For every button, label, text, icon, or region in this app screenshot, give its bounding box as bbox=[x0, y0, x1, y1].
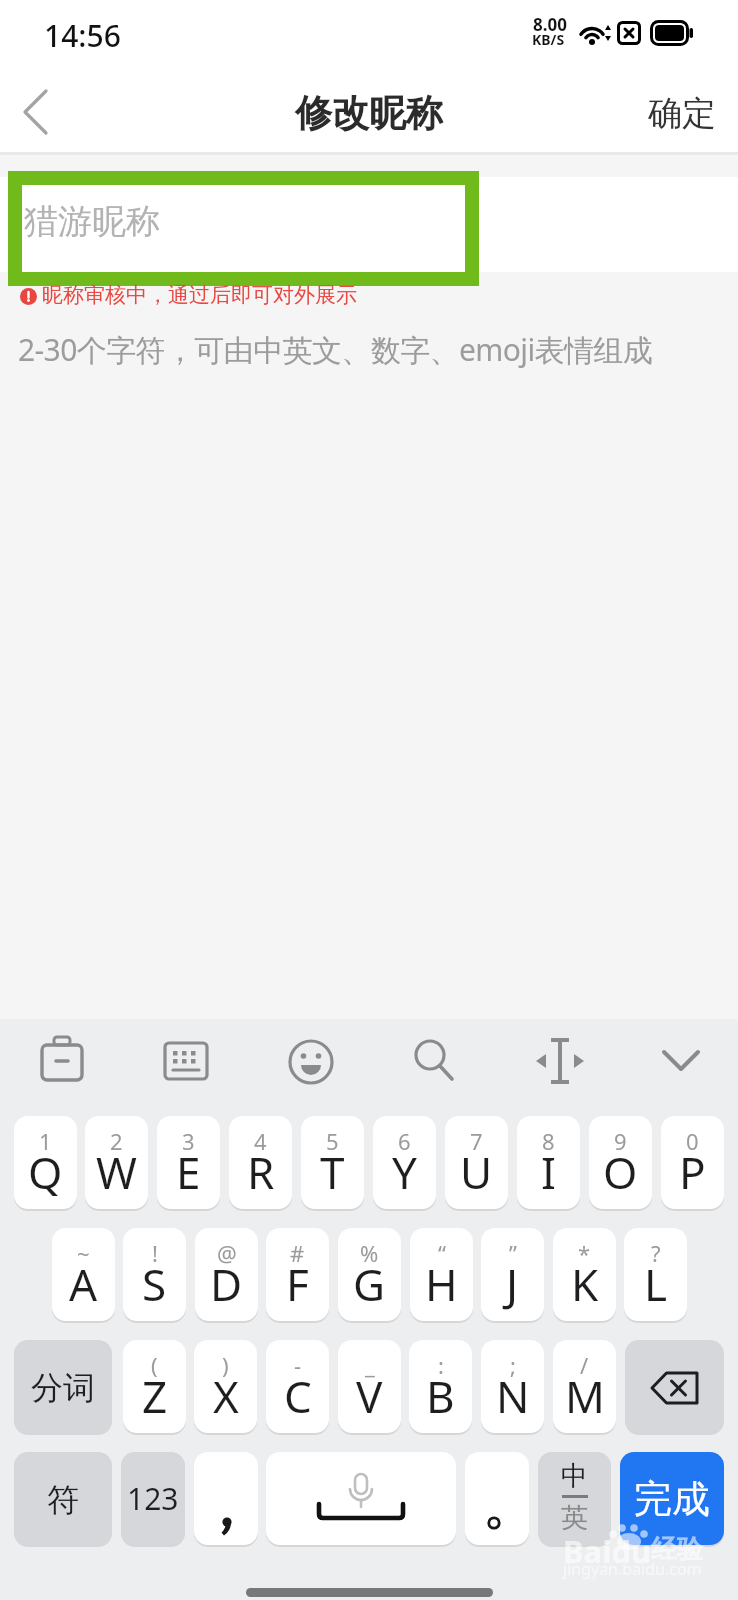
staticText: : bbox=[438, 1350, 444, 1380]
button[interactable]: ~ bbox=[52, 1228, 115, 1321]
button[interactable]: 4 bbox=[229, 1116, 292, 1209]
staticText: 123 bbox=[127, 1478, 179, 1519]
button[interactable]: 确定 bbox=[640, 88, 724, 138]
button[interactable] bbox=[465, 1452, 529, 1545]
staticText: 3 bbox=[182, 1126, 195, 1156]
button[interactable]: 9 bbox=[589, 1116, 652, 1209]
button[interactable] bbox=[401, 1027, 465, 1091]
button[interactable]: ; bbox=[481, 1340, 544, 1433]
staticText: 猎游昵称 bbox=[24, 200, 160, 243]
button[interactable]: 6 bbox=[373, 1116, 436, 1209]
staticText: R bbox=[247, 1142, 275, 1202]
staticText: Q bbox=[28, 1142, 63, 1202]
staticText: I bbox=[541, 1142, 556, 1202]
staticText: 1 bbox=[39, 1126, 52, 1156]
staticText: 0 bbox=[686, 1126, 699, 1156]
button[interactable]: ? bbox=[624, 1228, 687, 1321]
button[interactable]: # bbox=[266, 1228, 329, 1321]
staticText: U bbox=[460, 1142, 493, 1202]
staticText: - bbox=[294, 1350, 302, 1380]
staticText: D bbox=[210, 1254, 243, 1314]
staticText: O bbox=[603, 1142, 638, 1202]
button[interactable] bbox=[279, 1029, 343, 1093]
staticText: 中 bbox=[561, 1459, 588, 1493]
staticText: N bbox=[496, 1366, 530, 1426]
staticText: 经验 bbox=[651, 1533, 703, 1566]
staticText: X bbox=[213, 1366, 239, 1426]
staticText: E bbox=[176, 1142, 201, 1202]
staticText: 修改昵称 bbox=[295, 90, 443, 137]
staticText: W bbox=[96, 1142, 137, 1202]
staticText: M bbox=[565, 1366, 605, 1426]
staticText: # bbox=[290, 1238, 305, 1268]
button[interactable]: : bbox=[409, 1340, 472, 1433]
staticText: 确定 bbox=[648, 92, 716, 135]
staticText: J bbox=[506, 1254, 519, 1314]
button[interactable]: ( bbox=[123, 1340, 186, 1433]
staticText: ( bbox=[151, 1350, 158, 1380]
button[interactable]: @ bbox=[195, 1228, 258, 1321]
staticText: / bbox=[580, 1350, 589, 1380]
button[interactable]: 中 bbox=[538, 1452, 611, 1545]
button[interactable] bbox=[10, 85, 62, 141]
button[interactable]: 2 bbox=[85, 1116, 148, 1209]
button[interactable]: 5 bbox=[301, 1116, 364, 1209]
staticText: 6 bbox=[398, 1126, 411, 1156]
button[interactable]: ” bbox=[481, 1228, 544, 1321]
staticText: Y bbox=[392, 1142, 417, 1202]
staticText: ; bbox=[510, 1350, 516, 1380]
button[interactable]: 3 bbox=[157, 1116, 220, 1209]
staticText: F bbox=[286, 1254, 309, 1314]
staticText: 符 bbox=[47, 1480, 79, 1520]
staticText: ! bbox=[152, 1238, 158, 1268]
staticText: 7 bbox=[470, 1126, 483, 1156]
button[interactable]: - bbox=[266, 1340, 329, 1433]
staticText: Z bbox=[142, 1366, 168, 1426]
staticText: S bbox=[142, 1254, 167, 1314]
staticText: ? bbox=[651, 1238, 661, 1268]
button[interactable] bbox=[0, 177, 738, 272]
button[interactable] bbox=[649, 1029, 713, 1093]
button[interactable]: * bbox=[553, 1228, 616, 1321]
staticText: @ bbox=[217, 1238, 237, 1268]
staticText: ” bbox=[509, 1238, 517, 1268]
button[interactable]: 8 bbox=[517, 1116, 580, 1209]
staticText: KB/S bbox=[532, 30, 565, 49]
staticText: * bbox=[578, 1238, 591, 1268]
staticText: 8.00 bbox=[533, 13, 567, 36]
button[interactable]: 完成 bbox=[620, 1452, 724, 1545]
button[interactable]: 符 bbox=[14, 1452, 112, 1545]
staticText: 英 bbox=[561, 1501, 588, 1535]
button[interactable] bbox=[266, 1452, 456, 1545]
button[interactable] bbox=[194, 1452, 258, 1545]
staticText: ) bbox=[222, 1350, 229, 1380]
button[interactable]: 123 bbox=[121, 1452, 185, 1545]
button[interactable]: 分词 bbox=[14, 1340, 112, 1433]
staticText: C bbox=[284, 1366, 312, 1426]
staticText: jingyan.baidu.com bbox=[563, 1558, 702, 1580]
staticText: 14:56 bbox=[44, 15, 121, 56]
staticText: _ bbox=[365, 1350, 375, 1380]
button[interactable]: ! bbox=[123, 1228, 186, 1321]
button[interactable]: / bbox=[553, 1340, 616, 1433]
button[interactable] bbox=[528, 1029, 592, 1093]
button[interactable] bbox=[625, 1340, 724, 1433]
button[interactable]: 1 bbox=[14, 1116, 77, 1209]
staticText: V bbox=[356, 1366, 383, 1426]
staticText: ~ bbox=[77, 1238, 90, 1268]
staticText: 完成 bbox=[634, 1475, 710, 1523]
staticText: “ bbox=[438, 1238, 446, 1268]
staticText: Baidu bbox=[563, 1530, 652, 1572]
button[interactable]: 7 bbox=[445, 1116, 508, 1209]
button[interactable]: 0 bbox=[661, 1116, 724, 1209]
button[interactable] bbox=[154, 1029, 218, 1093]
button[interactable]: “ bbox=[410, 1228, 473, 1321]
staticText: T bbox=[320, 1142, 345, 1202]
staticText: % bbox=[360, 1238, 379, 1268]
button[interactable]: ) bbox=[194, 1340, 257, 1433]
button[interactable] bbox=[30, 1029, 94, 1093]
button[interactable]: % bbox=[338, 1228, 401, 1321]
staticText: 分词 bbox=[31, 1368, 95, 1408]
staticText: L bbox=[644, 1254, 668, 1314]
button[interactable]: _ bbox=[338, 1340, 401, 1433]
